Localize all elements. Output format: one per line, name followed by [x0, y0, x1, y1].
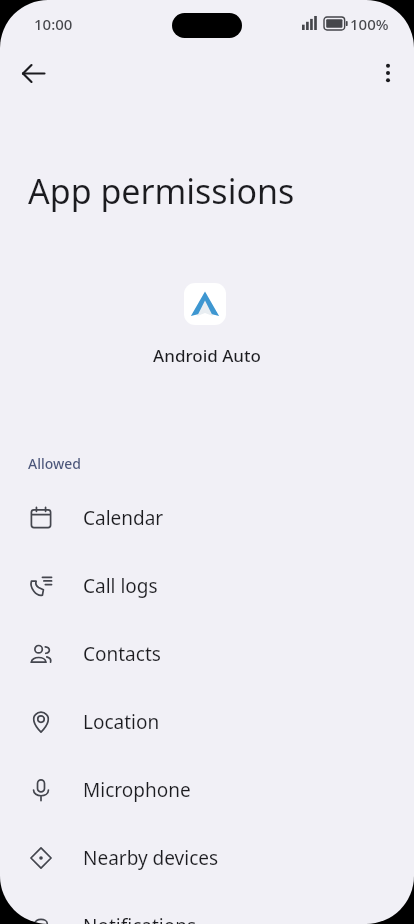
staticText: Microphone: [83, 777, 191, 803]
button[interactable]: Calendar: [0, 490, 414, 546]
button[interactable]: Notifications: [0, 898, 414, 924]
button[interactable]: Location: [0, 694, 414, 750]
staticText: App permissions: [28, 168, 295, 214]
staticText: Notifications: [83, 913, 197, 924]
staticText: Nearby devices: [83, 845, 219, 871]
staticText: Contacts: [83, 641, 161, 667]
button[interactable]: Back: [9, 49, 57, 97]
staticText: Calendar: [83, 505, 164, 531]
staticText: 100%: [350, 14, 389, 34]
staticText: Location: [83, 709, 160, 735]
staticText: Call logs: [83, 573, 158, 599]
staticText: Allowed: [28, 454, 82, 473]
staticText: Android Auto: [0, 344, 414, 367]
button[interactable]: More options: [364, 49, 412, 97]
button[interactable]: Call logs: [0, 558, 414, 614]
button[interactable]: Microphone: [0, 762, 414, 818]
button[interactable]: Nearby devices: [0, 830, 414, 886]
staticText: 10:00: [34, 14, 73, 34]
button[interactable]: Contacts: [0, 626, 414, 682]
